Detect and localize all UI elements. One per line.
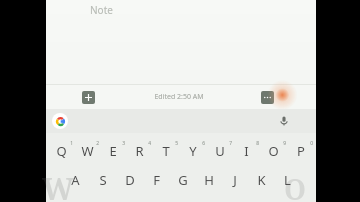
button[interactable]: Google search [52,113,68,129]
button[interactable]: Q [48,136,74,165]
staticText: S [99,171,107,189]
staticText: 3 [122,140,125,147]
button[interactable]: R [126,136,152,165]
button[interactable]: J [222,165,248,194]
staticText: H [204,171,214,189]
button[interactable]: G [170,165,196,194]
button[interactable]: T [152,136,179,165]
button[interactable]: L [274,165,300,194]
staticText: 7 [229,140,232,147]
button[interactable]: Note [46,0,316,84]
button[interactable]: More options [261,91,274,104]
staticText: 4 [148,140,151,147]
staticText: L [284,171,291,189]
button[interactable]: A [62,165,89,194]
staticText: A [71,171,80,189]
staticText: 0 [310,140,313,147]
button[interactable]: Add attachment [82,91,95,104]
button[interactable]: Y [179,136,206,165]
staticText: E [109,142,117,160]
button[interactable]: F [143,165,170,194]
button[interactable]: D [116,165,143,194]
button[interactable]: E [100,136,126,165]
staticText: R [135,142,144,160]
staticText: K [257,171,266,189]
staticText: G [178,171,188,189]
button[interactable]: S [89,165,116,194]
staticText: F [153,171,160,189]
staticText: 9 [283,140,286,147]
staticText: D [125,171,135,189]
staticText: I [244,142,249,160]
staticText: O [268,142,279,160]
button[interactable]: U [206,136,233,165]
button[interactable]: I [233,136,260,165]
staticText: 2 [96,140,99,147]
staticText: J [233,171,237,189]
staticText: P [297,142,305,160]
staticText: W [81,142,94,160]
staticText: W [42,168,75,202]
staticText: Y [189,142,197,160]
button[interactable]: H [196,165,222,194]
staticText: 1 [70,140,73,147]
button[interactable]: W [74,136,100,165]
staticText: 5 [175,140,178,147]
staticText: Edited 2:50 AM [154,92,204,102]
staticText: 8 [256,140,259,147]
button[interactable]: P [287,136,314,165]
button[interactable]: Voice input [276,113,292,129]
staticText: O [284,170,307,202]
button[interactable]: O [260,136,287,165]
button[interactable]: K [248,165,274,194]
staticText: 6 [202,140,205,147]
staticText: Q [56,142,67,160]
staticText: T [162,142,170,160]
staticText: Note [90,3,113,17]
staticText: U [215,142,225,160]
